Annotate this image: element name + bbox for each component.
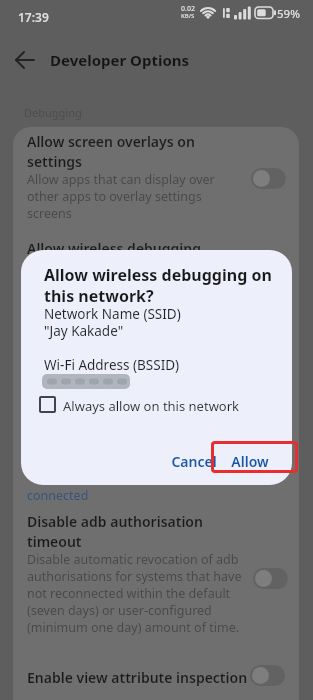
staticText: Allow wireless debugging — [27, 239, 201, 258]
button[interactable] — [8, 46, 44, 74]
staticText: Allow — [231, 452, 269, 471]
button[interactable] — [250, 665, 285, 686]
button[interactable]: Allow — [219, 444, 281, 478]
staticText: Allow wireless debugging on this network… — [44, 264, 272, 307]
button[interactable] — [251, 168, 286, 189]
button[interactable] — [13, 652, 299, 700]
staticText: Debugging — [24, 105, 82, 120]
staticText: Disable automatic revocation of adb auth… — [27, 551, 242, 636]
staticText: Enable view attribute inspection — [27, 668, 248, 687]
staticText: Developer Options — [50, 50, 190, 70]
staticText: Network Name (SSID) — [44, 305, 181, 323]
button[interactable]: Cancel — [161, 444, 227, 478]
button[interactable] — [13, 127, 299, 231]
staticText: 0.02 — [181, 4, 195, 14]
staticText: 59% — [277, 6, 300, 22]
staticText: Allow screen overlays on settings — [27, 132, 195, 171]
button[interactable] — [253, 568, 288, 589]
staticText: Allow apps that can display over other a… — [27, 171, 215, 222]
staticText: connected — [27, 487, 89, 504]
staticText: 17:39 — [18, 9, 49, 25]
staticText: Wi-Fi Address (BSSID) — [44, 356, 180, 374]
button[interactable] — [31, 388, 271, 422]
staticText: Always allow on this network — [63, 397, 240, 415]
button[interactable] — [13, 505, 299, 635]
staticText: Cancel — [171, 452, 217, 471]
staticText: "Jay Kakade" — [44, 322, 124, 340]
staticText: Disable adb authorisation timeout — [27, 512, 203, 551]
staticText: KB/S — [181, 12, 195, 20]
